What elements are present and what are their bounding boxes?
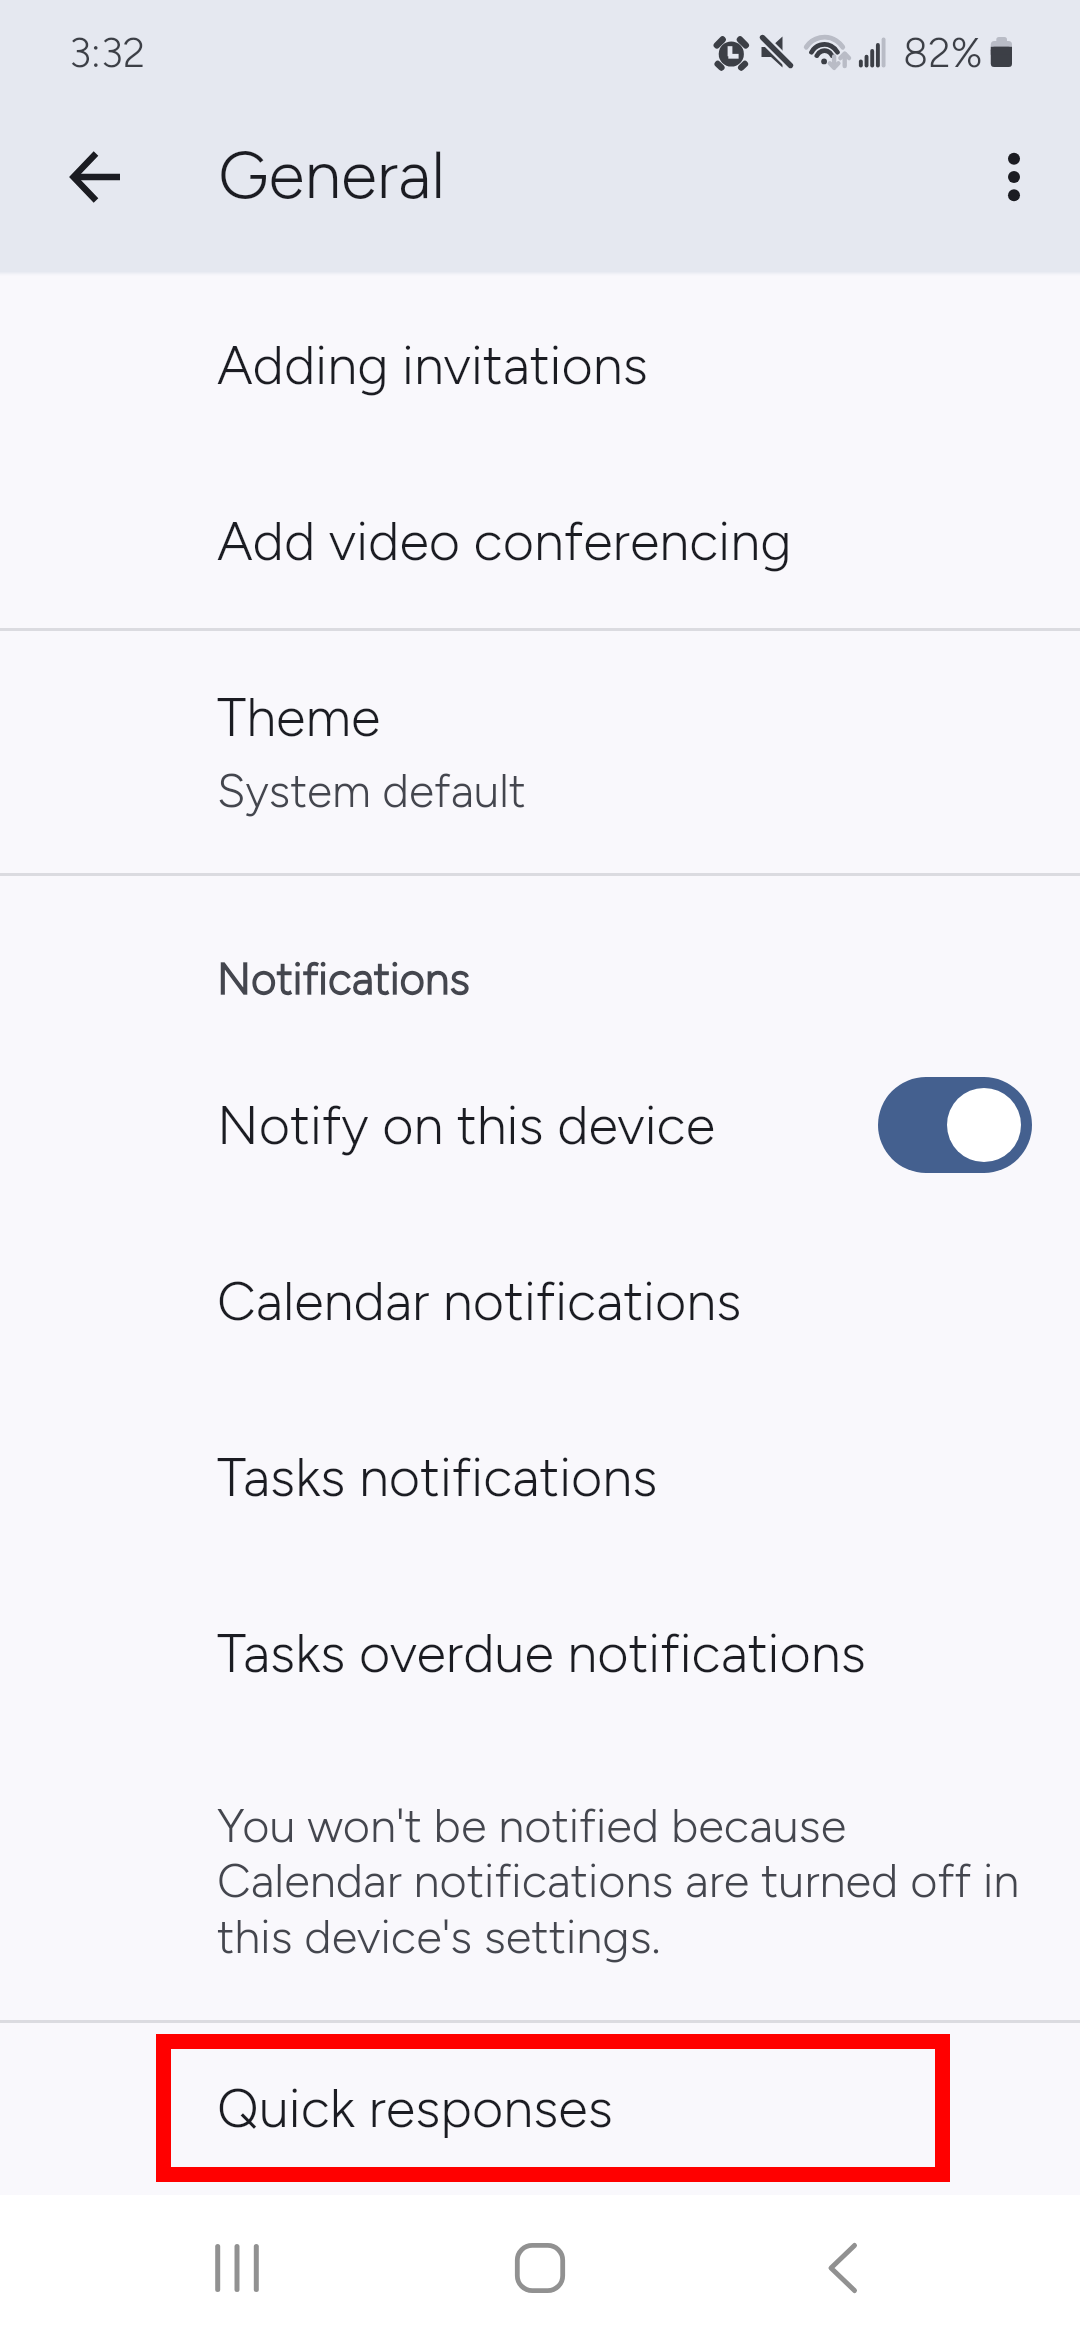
button[interactable]: Add video conferencing [0,451,1080,628]
staticText: 82% [903,28,983,77]
button[interactable]: Tasks overdue notifications [0,1583,1080,1759]
staticText: Adding invitations [217,333,648,398]
button[interactable]: Notify on this device [0,1056,1080,1231]
staticText: System default [217,763,526,818]
button[interactable]: Back [48,129,144,225]
staticText: Add video conferencing [217,509,792,574]
button[interactable]: More options [966,129,1062,225]
button[interactable]: Theme [0,631,1080,873]
staticText: Notifications [217,952,470,1005]
button[interactable]: Back [795,2220,891,2316]
button[interactable]: Quick responses [0,2023,1080,2195]
button[interactable]: Calendar notifications [0,1231,1080,1407]
staticText: Tasks notifications [217,1445,658,1510]
staticText: Calendar notifications [217,1269,742,1334]
button[interactable]: Notify on this device, on [878,1077,1032,1173]
staticText: General [218,135,446,214]
staticText: You won't be notified because Calendar n… [217,1797,1029,1965]
button[interactable]: Home [492,2220,588,2316]
button[interactable]: Adding invitations [0,272,1080,451]
staticText: Theme [217,685,381,750]
button[interactable]: Tasks notifications [0,1407,1080,1583]
staticText: Tasks overdue notifications [217,1621,866,1686]
staticText: Notify on this device [217,1093,715,1158]
staticText: Quick responses [217,2076,613,2141]
staticText: 3:32 [69,28,146,77]
button[interactable]: Recent apps [189,2220,285,2316]
